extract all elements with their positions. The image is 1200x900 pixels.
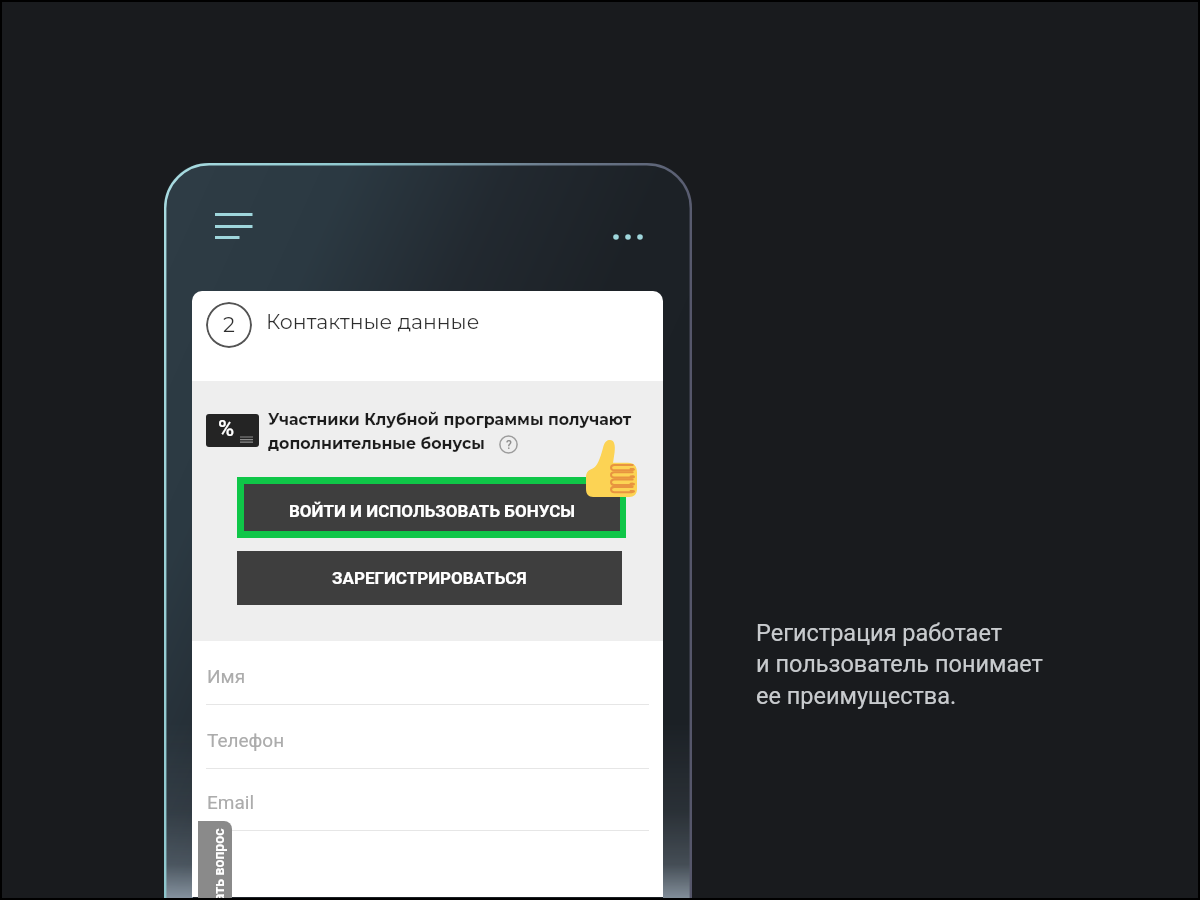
staticText: ВОЙТИ И ИСПОЛЬЗОВАТЬ БОНУСЫ [289, 501, 576, 521]
staticText: % [218, 416, 235, 442]
staticText: Регистрация работает и пользователь пони… [756, 619, 1043, 710]
staticText: ЗАРЕГИСТРИРОВАТЬСЯ [332, 568, 527, 588]
staticText: Участники Клубной программы получают доп… [268, 410, 632, 453]
button[interactable]: Menu [211, 207, 256, 241]
button[interactable]: ЗАРЕГИСТРИРОВАТЬСЯ [237, 551, 622, 605]
staticText: Контактные данные [266, 309, 480, 334]
staticText: 2 [223, 312, 235, 338]
staticText: Имя [207, 665, 246, 687]
staticText: Email [207, 791, 255, 813]
staticText: Телефон [207, 729, 285, 751]
button[interactable]: Help [499, 435, 518, 454]
button[interactable]: More options [604, 223, 649, 249]
staticText: Задать вопрос [211, 828, 227, 900]
button[interactable]: ВОЙТИ И ИСПОЛЬЗОВАТЬ БОНУСЫ [244, 484, 620, 531]
staticText: ? [506, 438, 512, 452]
button[interactable] [198, 821, 232, 900]
